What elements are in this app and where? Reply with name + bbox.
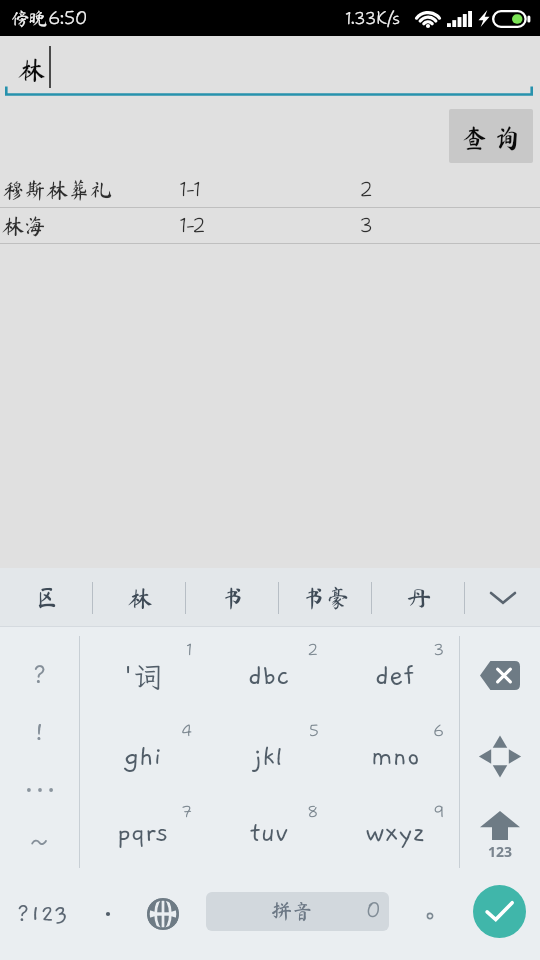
- staticText: jkl: [254, 742, 284, 772]
- button[interactable]: ~: [0, 818, 79, 868]
- staticText: 3: [359, 212, 373, 239]
- staticText: ghi: [124, 742, 163, 772]
- staticText: 1-1: [179, 176, 202, 203]
- staticText: 4: [181, 720, 193, 741]
- staticText: 1.33K/s: [345, 7, 401, 30]
- button[interactable]: 丹: [372, 568, 465, 627]
- button[interactable]: Arrow keys: [460, 716, 540, 797]
- staticText: 123: [488, 842, 513, 861]
- staticText: 6:50: [48, 6, 88, 30]
- button[interactable]: def: [332, 635, 458, 716]
- button[interactable]: !: [0, 704, 79, 761]
- button[interactable]: 书豪: [279, 568, 372, 627]
- button[interactable]: ?123: [0, 868, 85, 960]
- button[interactable]: Switch to numbers and symbols: [460, 797, 540, 868]
- button[interactable]: ?: [0, 647, 79, 704]
- button[interactable]: pqrs: [80, 797, 206, 868]
- button[interactable]: 林: [93, 568, 186, 627]
- button[interactable]: 查 询: [449, 109, 533, 163]
- button[interactable]: 区: [0, 568, 93, 627]
- staticText: 6: [433, 720, 445, 741]
- staticText: 5: [309, 720, 319, 741]
- button[interactable]: [0, 761, 79, 818]
- staticText: 丹: [407, 586, 431, 610]
- staticText: 林: [128, 586, 152, 610]
- staticText: 傍晚: [11, 9, 47, 27]
- button[interactable]: 拼音: [206, 892, 389, 931]
- staticText: ?: [32, 662, 48, 690]
- button[interactable]: 书: [186, 568, 279, 627]
- button[interactable]: More candidates: [465, 568, 540, 627]
- staticText: 2: [359, 176, 373, 203]
- button[interactable]: mno: [332, 716, 458, 797]
- button[interactable]: jkl: [206, 716, 332, 797]
- button[interactable]: ghi: [80, 716, 206, 797]
- staticText: 8: [307, 801, 319, 822]
- staticText: 7: [181, 801, 193, 822]
- staticText: wxyz: [365, 818, 425, 848]
- staticText: 查 询: [461, 124, 521, 151]
- staticText: 0: [366, 896, 381, 924]
- staticText: mno: [371, 742, 420, 772]
- staticText: 1-2: [179, 212, 206, 239]
- button[interactable]: Comma: [85, 868, 130, 960]
- staticText: 9: [433, 801, 445, 822]
- button[interactable]: Backspace: [460, 635, 540, 716]
- staticText: ?123: [16, 901, 69, 927]
- button[interactable]: Period: [405, 868, 455, 960]
- staticText: dbc: [248, 661, 290, 691]
- staticText: 林: [18, 56, 45, 83]
- staticText: 3: [433, 639, 445, 660]
- button[interactable]: Confirm: [473, 885, 526, 938]
- staticText: 区: [35, 586, 59, 610]
- staticText: pqrs: [117, 818, 169, 848]
- button[interactable]: '词: [80, 635, 206, 716]
- button[interactable]: tuv: [206, 797, 332, 868]
- staticText: 林海: [2, 215, 47, 237]
- button[interactable]: 穆斯林葬礼: [0, 172, 540, 208]
- staticText: tuv: [250, 818, 289, 848]
- staticText: 1: [186, 639, 193, 660]
- staticText: 书: [221, 586, 245, 610]
- button[interactable]: dbc: [206, 635, 332, 716]
- staticText: !: [33, 719, 46, 747]
- staticText: '词: [123, 657, 163, 695]
- staticText: ~: [28, 829, 51, 857]
- staticText: def: [375, 661, 415, 691]
- button[interactable]: Switch keyboard language: [130, 868, 196, 960]
- staticText: 2: [307, 639, 319, 660]
- staticText: 拼音: [271, 901, 313, 922]
- staticText: 书豪: [302, 586, 350, 610]
- staticText: 穆斯林葬礼: [2, 179, 113, 201]
- button[interactable]: 林海: [0, 208, 540, 244]
- button[interactable]: wxyz: [332, 797, 458, 868]
